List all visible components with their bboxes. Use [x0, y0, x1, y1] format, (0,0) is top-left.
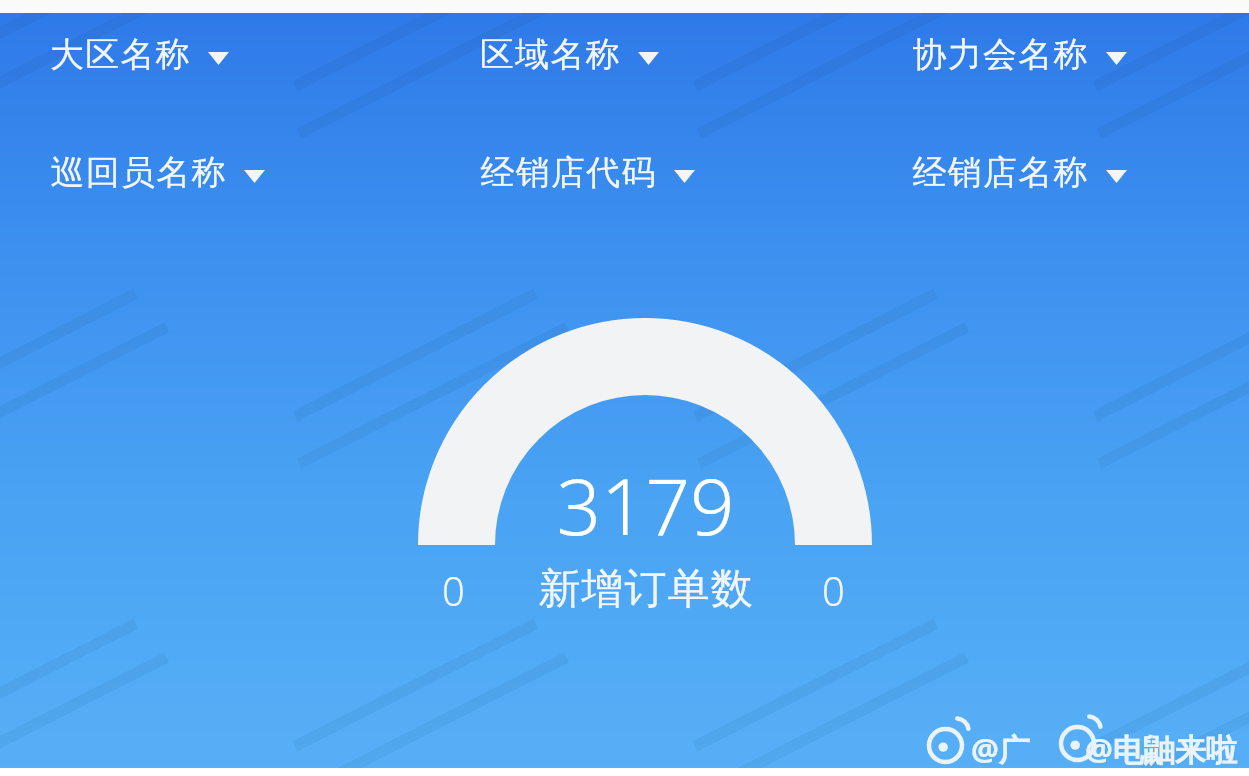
- button[interactable]: 区域名称: [480, 28, 670, 80]
- staticText: 经销店代码: [480, 151, 656, 194]
- staticText: 巡回员名称: [50, 151, 226, 194]
- button[interactable]: 3179: [465, 452, 825, 542]
- button[interactable]: 经销店代码: [480, 146, 706, 198]
- staticText: @电鼬来啦: [1085, 728, 1237, 770]
- button[interactable]: 协力会名称: [912, 28, 1138, 80]
- other: Weibo account watermark: [925, 723, 1237, 769]
- staticText: @广: [971, 728, 1030, 770]
- staticText: 经销店名称: [912, 151, 1088, 194]
- staticText: 0: [822, 563, 845, 617]
- staticText: 协力会名称: [912, 33, 1088, 76]
- button[interactable]: 巡回员名称: [50, 146, 276, 198]
- staticText: 3179: [556, 452, 735, 542]
- button[interactable]: 经销店名称: [912, 146, 1138, 198]
- button[interactable]: 大区名称: [50, 28, 240, 80]
- staticText: 0: [442, 563, 465, 617]
- staticText: 区域名称: [480, 33, 621, 76]
- staticText: 新增订单数: [538, 563, 753, 616]
- staticText: 大区名称: [50, 33, 191, 76]
